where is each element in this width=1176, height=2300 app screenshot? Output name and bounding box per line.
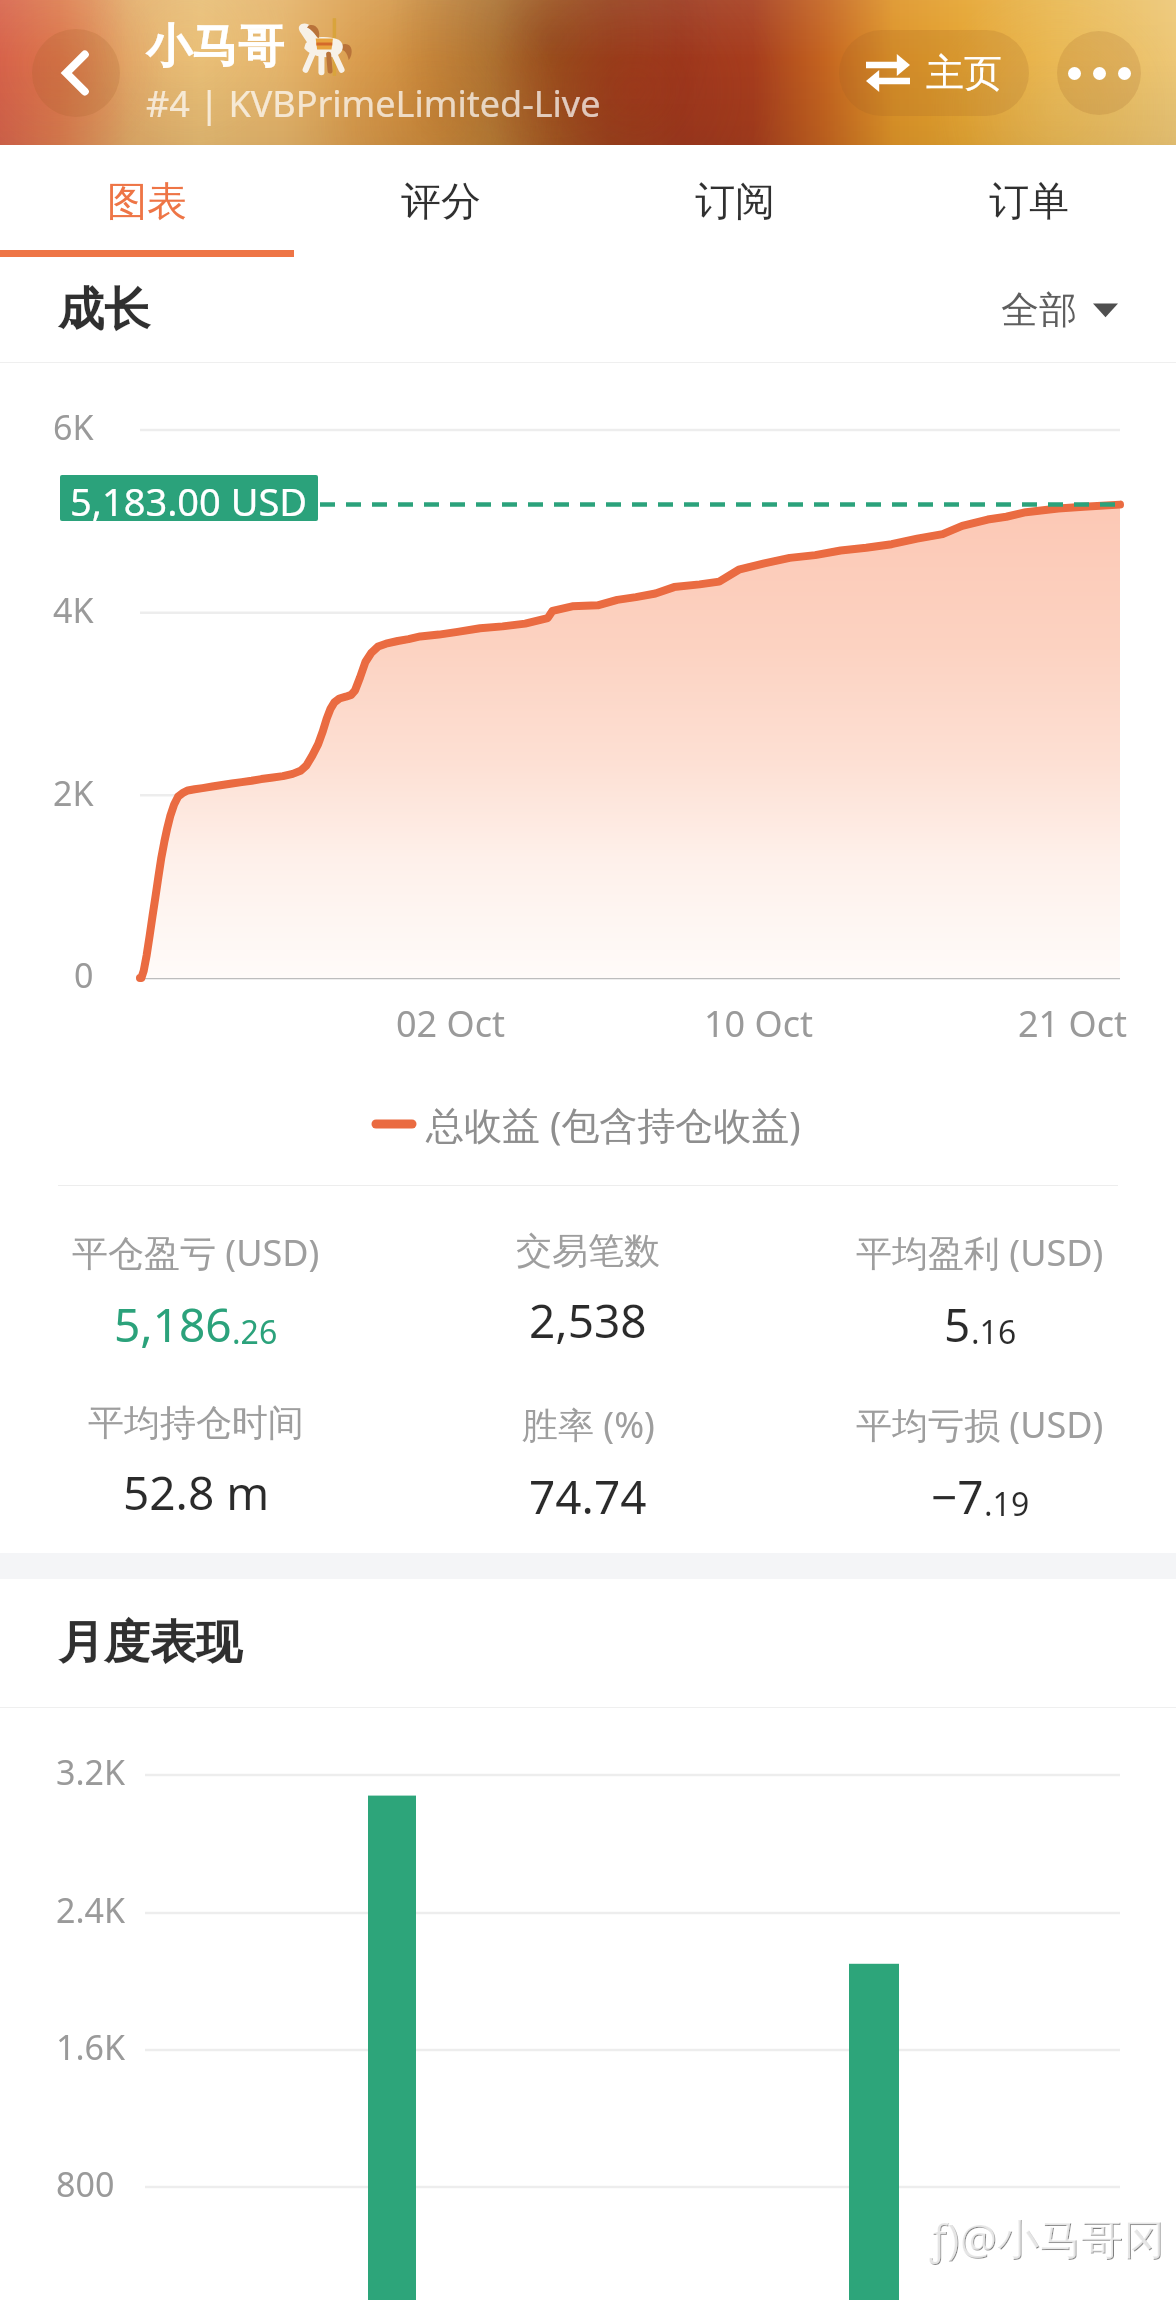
- staticText: .26: [232, 1310, 278, 1354]
- staticText: .19: [984, 1482, 1030, 1526]
- staticText: 交易笔数: [516, 1228, 660, 1273]
- staticText: 800: [56, 2161, 115, 2207]
- staticText: 5,186: [114, 1293, 232, 1356]
- button[interactable]: More options: [1057, 31, 1141, 115]
- staticText: 胜率 (%): [522, 1400, 655, 1449]
- button[interactable]: 平均持仓时间: [0, 1400, 392, 1524]
- button[interactable]: 图表: [0, 145, 294, 257]
- staticText: 2,538: [529, 1289, 647, 1352]
- staticText: 成长: [58, 281, 150, 339]
- button[interactable]: 订阅: [588, 145, 882, 257]
- staticText: ƒ)@小马哥冈: [928, 2208, 1164, 2265]
- staticText: 订单: [989, 176, 1069, 226]
- staticText: 5,183.00 USD: [70, 475, 308, 521]
- staticText: 3.2K: [56, 1749, 126, 1795]
- button[interactable]: 订单: [882, 145, 1176, 257]
- staticText: 评分: [401, 176, 481, 226]
- button[interactable]: 平均亏损 (USD): [784, 1400, 1176, 1528]
- staticText: 74.74: [529, 1465, 647, 1528]
- staticText: 10 Oct: [704, 999, 813, 1048]
- button[interactable]: 平均盈利 (USD): [784, 1228, 1176, 1356]
- staticText: .16: [971, 1310, 1017, 1354]
- staticText: 图表: [107, 176, 187, 226]
- staticText: 2.4K: [56, 1887, 126, 1933]
- staticText: 平均亏损 (USD): [856, 1400, 1104, 1449]
- staticText: 总收益 (包含持仓收益): [426, 1098, 801, 1150]
- button[interactable]: 主页: [839, 30, 1029, 116]
- staticText: 5: [944, 1293, 971, 1356]
- staticText: 02 Oct: [396, 999, 505, 1048]
- staticText: 4K: [53, 587, 94, 633]
- staticText: 订阅: [695, 176, 775, 226]
- staticText: −7: [931, 1465, 984, 1528]
- staticText: 1.6K: [56, 2024, 126, 2070]
- staticText: ƒ)@小马哥冈: [929, 2209, 1165, 2266]
- button[interactable]: Back: [32, 29, 120, 117]
- button[interactable]: 全部: [1001, 280, 1118, 340]
- staticText: 6K: [53, 404, 94, 450]
- button[interactable]: 评分: [294, 145, 588, 257]
- staticText: 平均持仓时间: [88, 1400, 304, 1445]
- staticText: ƒ)@小马哥冈: [930, 2210, 1166, 2267]
- staticText: 平均盈利 (USD): [856, 1228, 1104, 1277]
- staticText: 0: [74, 952, 94, 998]
- staticText: 主页: [926, 49, 1002, 97]
- button[interactable]: 交易笔数: [392, 1228, 784, 1352]
- button[interactable]: 平仓盈亏 (USD): [0, 1228, 392, 1356]
- staticText: 月度表现: [58, 1614, 242, 1672]
- staticText: 21 Oct: [1018, 999, 1127, 1048]
- staticText: 平仓盈亏 (USD): [72, 1228, 320, 1277]
- staticText: 52.8 m: [123, 1461, 270, 1524]
- staticText: 全部: [1001, 286, 1077, 334]
- staticText: 2K: [53, 770, 94, 816]
- button[interactable]: 胜率 (%): [392, 1400, 784, 1528]
- staticText: 小马哥: [146, 18, 284, 76]
- staticText: #4 | KVBPrimeLimited-Live: [146, 79, 601, 128]
